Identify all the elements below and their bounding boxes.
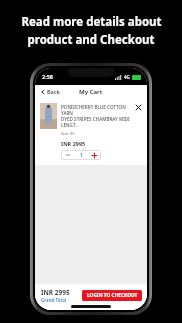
staticText: INR 2995 (41, 288, 70, 297)
staticText: My Cart (79, 88, 103, 96)
staticText: 1 (80, 152, 83, 159)
button[interactable]: Back (39, 87, 62, 96)
button[interactable] (40, 103, 57, 129)
staticText: Back (47, 88, 60, 95)
staticText: Size XS (61, 131, 75, 137)
staticText: 4G (124, 74, 130, 80)
staticText: LOGIN TO CHECKOUT (87, 292, 138, 299)
staticText: PONDICHERRY BLUE COTTON YARN (61, 104, 134, 116)
button[interactable]: Decrease quantity (61, 150, 75, 160)
staticText: DYED STRIPES CHAMBRAY MIDI LENGT... (61, 116, 134, 128)
staticText: Read more details about (21, 14, 162, 30)
staticText: 2:58 (42, 73, 53, 80)
button[interactable]: Remove item (134, 103, 143, 112)
staticText: Grand Total (41, 297, 66, 303)
button[interactable]: LOGIN TO CHECKOUT (82, 290, 142, 301)
staticText: product and Checkout (27, 32, 155, 48)
button[interactable]: Increase quantity (88, 150, 101, 160)
staticText: INR 2995 (61, 140, 86, 147)
